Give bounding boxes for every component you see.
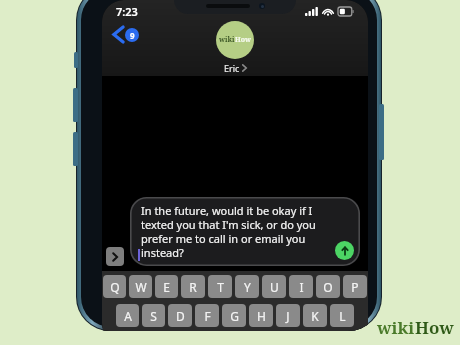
button[interactable]: T [208,275,232,298]
staticText: K [311,308,319,324]
button[interactable]: K [303,304,327,327]
staticText: How [235,35,252,45]
staticText: J [286,308,290,324]
staticText: H [257,308,266,324]
button[interactable]: O [316,275,340,298]
staticText: D [176,308,185,324]
button[interactable]: wiki [210,20,260,75]
staticText: S [150,308,157,324]
button[interactable]: I [289,275,313,298]
staticText: L [339,308,346,324]
staticText: 7:23 [116,4,138,19]
staticText: F [204,308,211,324]
button[interactable]: F [195,304,219,327]
staticText: In the future, would it be okay if I tex… [141,203,331,260]
staticText: P [351,279,359,295]
button[interactable]: Y [235,275,259,298]
staticText: A [124,308,132,324]
staticText: I [299,279,304,295]
staticText: wiki [219,35,235,45]
staticText: W [135,279,147,295]
button[interactable]: D [168,304,192,327]
button[interactable]: W [129,275,152,298]
button[interactable]: H [249,304,273,327]
button[interactable]: L [330,304,354,327]
staticText: Q [110,279,120,295]
button[interactable]: Send [335,241,354,260]
staticText: Eric [224,62,240,74]
staticText: 9 [130,30,135,41]
button[interactable]: A [116,304,139,327]
button[interactable]: Q [103,275,126,298]
staticText: How [415,316,454,339]
staticText: wiki [377,316,415,339]
button[interactable]: R [181,275,205,298]
button[interactable]: G [222,304,246,327]
button[interactable]: Back [108,22,144,47]
staticText: O [323,279,333,295]
staticText: G [230,308,239,324]
button[interactable]: In the future, would it be okay if I tex… [130,197,360,266]
button[interactable]: U [262,275,286,298]
staticText: Y [244,279,251,295]
button[interactable]: E [155,275,178,298]
button[interactable]: Expand keyboard [106,247,124,266]
button[interactable]: S [142,304,165,327]
staticText: E [163,279,170,295]
staticText: T [217,279,224,295]
staticText: U [270,279,279,295]
staticText: R [189,279,197,295]
button[interactable]: P [343,275,367,298]
button[interactable]: J [276,304,300,327]
